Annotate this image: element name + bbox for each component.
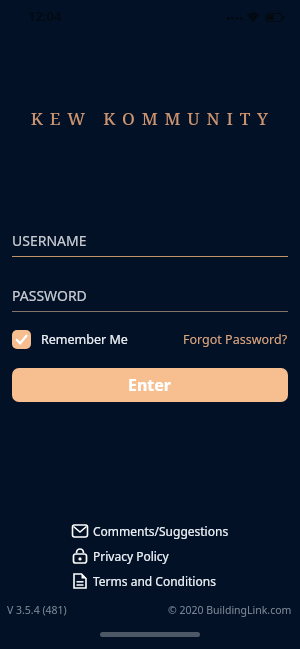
staticText: 12:04 [28, 7, 62, 25]
staticText: PASSWORD [12, 286, 87, 305]
staticText: Terms and Conditions [93, 573, 216, 589]
staticText: Remember Me [41, 331, 128, 348]
button[interactable]: Forgot Password? [183, 331, 288, 348]
button[interactable]: PASSWORD [12, 286, 288, 312]
button[interactable]: Privacy Policy [72, 544, 169, 568]
button[interactable]: Terms and Conditions [72, 569, 216, 593]
staticText: Privacy Policy [93, 548, 169, 564]
staticText: Comments/Suggestions [93, 523, 229, 539]
button[interactable]: Comments/Suggestions [72, 519, 229, 543]
staticText: V 3.5.4 (481) [7, 603, 67, 617]
button[interactable]: USERNAME [12, 231, 288, 257]
staticText: K E W K O M M U N I T Y [0, 107, 300, 130]
staticText: Enter [128, 374, 172, 396]
button[interactable]: Enter [12, 368, 288, 402]
button[interactable]: Remember Me [12, 330, 128, 349]
staticText: USERNAME [12, 231, 87, 250]
staticText: © 2020 BuildingLink.com [168, 603, 292, 617]
